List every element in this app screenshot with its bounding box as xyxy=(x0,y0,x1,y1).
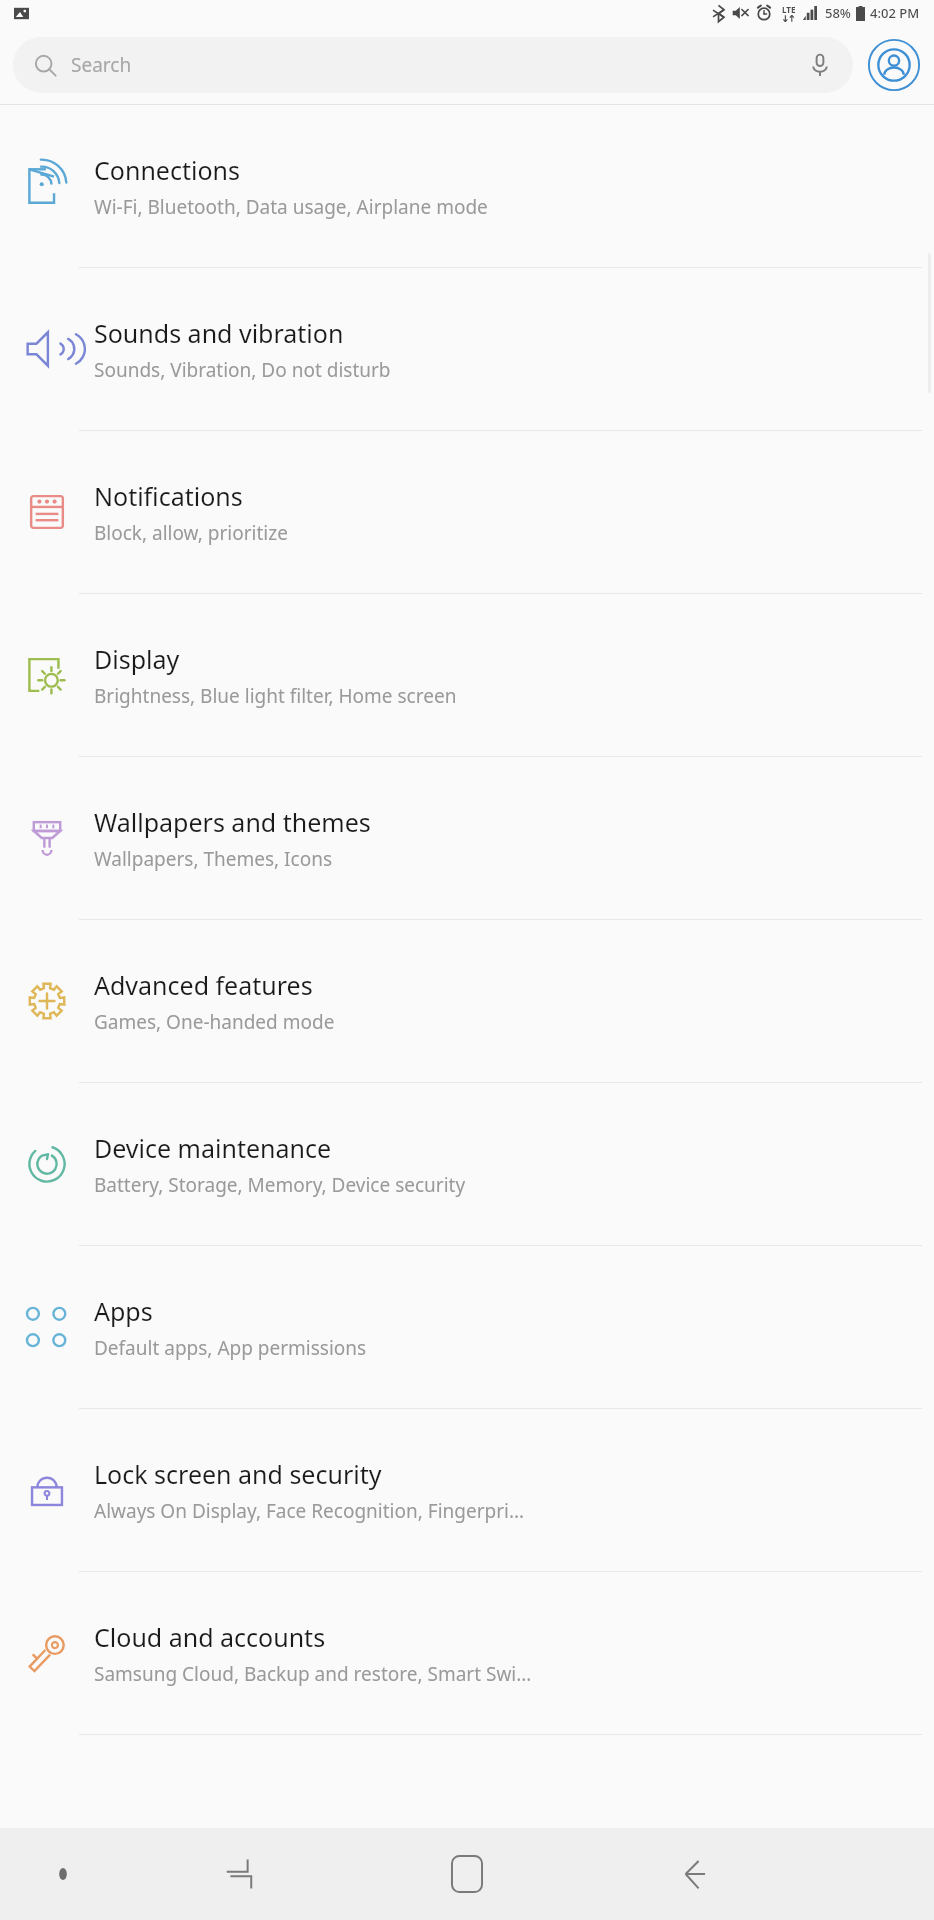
staticText: Cloud and accounts xyxy=(94,1620,326,1654)
staticText: Default apps, App permissions xyxy=(94,1335,367,1361)
button[interactable]: Recents xyxy=(125,1828,353,1920)
button[interactable]: Lock screen and security xyxy=(0,1409,934,1571)
staticText: LTE xyxy=(782,4,796,15)
button[interactable]: Notifications xyxy=(0,431,934,593)
staticText: Lock screen and security xyxy=(94,1457,382,1491)
button[interactable]: Account xyxy=(867,38,921,92)
staticText: Advanced features xyxy=(94,968,313,1002)
button[interactable]: Search xyxy=(13,37,853,93)
button[interactable]: Cloud and accounts xyxy=(0,1572,934,1734)
staticText: 4:02 PM xyxy=(870,4,920,22)
button[interactable]: Back xyxy=(581,1828,809,1920)
staticText: Search xyxy=(71,52,132,78)
staticText: Apps xyxy=(94,1294,153,1328)
staticText: Display xyxy=(94,642,180,676)
button[interactable]: Apps xyxy=(0,1246,934,1408)
button[interactable]: Voice search xyxy=(805,50,835,80)
staticText: Always On Display, Face Recognition, Fin… xyxy=(94,1498,524,1524)
button[interactable]: Wallpapers and themes xyxy=(0,757,934,919)
staticText: Sounds, Vibration, Do not disturb xyxy=(94,357,391,383)
staticText: 58% xyxy=(825,4,851,22)
staticText: Brightness, Blue light filter, Home scre… xyxy=(94,683,457,709)
staticText: Wallpapers, Themes, Icons xyxy=(94,846,333,872)
button[interactable]: Sounds and vibration xyxy=(0,268,934,430)
staticText: Connections xyxy=(94,153,240,187)
staticText: Device maintenance xyxy=(94,1131,332,1165)
button[interactable]: Home xyxy=(353,1828,581,1920)
staticText: Battery, Storage, Memory, Device securit… xyxy=(94,1172,466,1198)
staticText: Games, One-handed mode xyxy=(94,1009,335,1035)
staticText: Block, allow, prioritize xyxy=(94,520,288,546)
button[interactable]: Connections xyxy=(0,105,934,267)
button[interactable]: Display xyxy=(0,594,934,756)
staticText: Notifications xyxy=(94,479,243,513)
staticText: Sounds and vibration xyxy=(94,316,344,350)
button[interactable]: Advanced features xyxy=(0,920,934,1082)
staticText: Wallpapers and themes xyxy=(94,805,371,839)
staticText: Samsung Cloud, Backup and restore, Smart… xyxy=(94,1661,532,1687)
button[interactable]: Device maintenance xyxy=(0,1083,934,1245)
staticText: Wi-Fi, Bluetooth, Data usage, Airplane m… xyxy=(94,194,488,220)
